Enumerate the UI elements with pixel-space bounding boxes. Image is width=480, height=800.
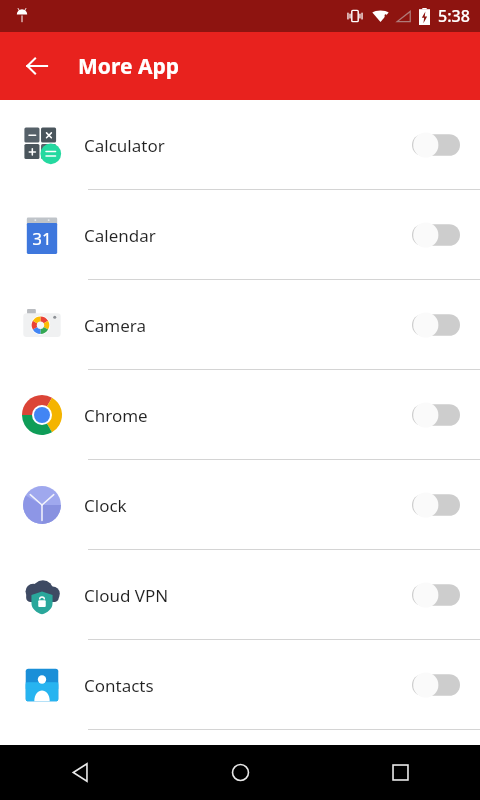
button[interactable]: Calculator <box>0 100 480 190</box>
button[interactable]: Camera <box>0 280 480 370</box>
button[interactable]: Cloud VPN <box>0 550 480 640</box>
button[interactable]: Back <box>14 43 60 89</box>
button[interactable]: Chrome <box>0 370 480 460</box>
staticText: Calendar <box>84 224 412 247</box>
staticText: Camera <box>84 314 412 337</box>
staticText: Clock <box>84 494 412 517</box>
staticText: Cloud VPN <box>84 584 412 607</box>
staticText: More App <box>78 52 179 81</box>
staticText: Calculator <box>84 134 412 157</box>
staticText: 5:38 <box>438 5 470 27</box>
button[interactable]: Clock <box>0 460 480 550</box>
staticText: Chrome <box>84 404 412 427</box>
staticText: 31 <box>32 227 52 250</box>
button[interactable]: Recent apps <box>320 745 480 800</box>
button[interactable]: Back <box>0 745 160 800</box>
button[interactable]: Contacts <box>0 640 480 730</box>
staticText: Contacts <box>84 674 412 697</box>
button[interactable]: Home <box>160 745 320 800</box>
button[interactable]: 31 <box>0 190 480 280</box>
